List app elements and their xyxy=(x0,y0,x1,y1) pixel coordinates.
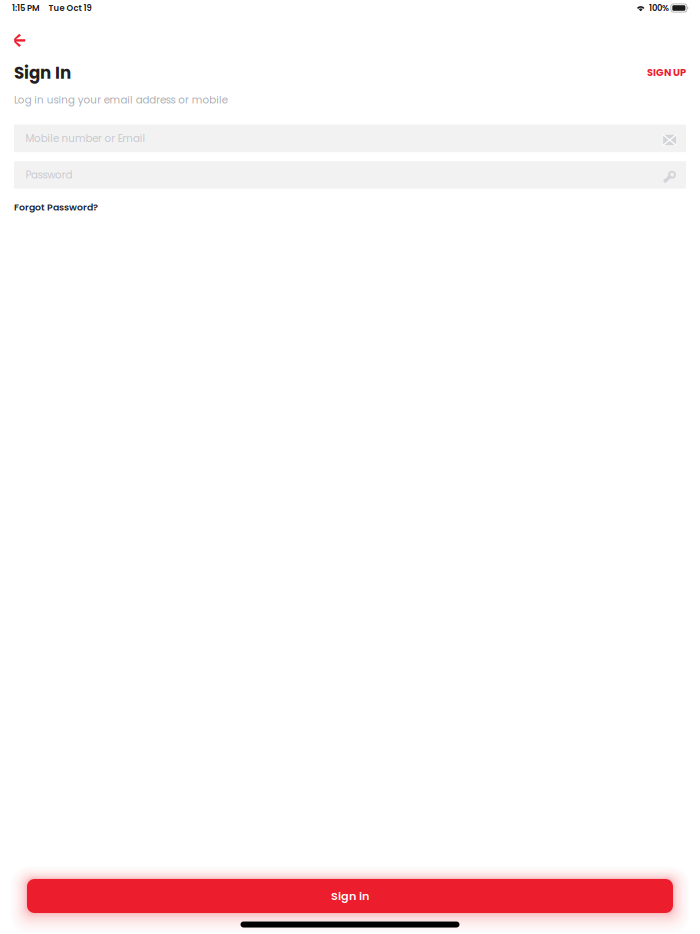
staticText: Sign In xyxy=(14,61,71,85)
staticText: Log in using your email address or mobil… xyxy=(14,93,228,107)
staticText: 1:15 PM xyxy=(12,2,40,14)
staticText: Mobile number or Email xyxy=(25,131,145,146)
staticText: Tue Oct 19 xyxy=(48,2,91,14)
staticText: Sign in xyxy=(331,888,369,904)
staticText: 100% xyxy=(649,2,669,14)
staticText: Forgot Password? xyxy=(14,201,98,214)
button[interactable]: Sign in xyxy=(27,879,673,913)
staticText: Password xyxy=(25,168,72,182)
staticText: SIGN UP xyxy=(647,66,686,79)
button[interactable]: SIGN UP xyxy=(633,63,686,87)
button[interactable]: Back xyxy=(0,16,39,54)
button[interactable]: Forgot Password? xyxy=(14,196,98,219)
